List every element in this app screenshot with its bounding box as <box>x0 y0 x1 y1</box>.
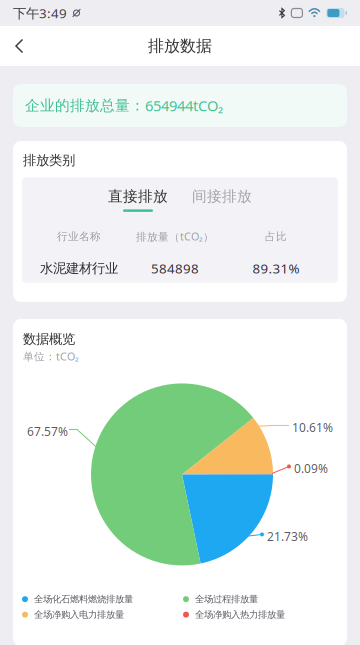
staticText: 行业名称 <box>57 230 101 243</box>
staticText: 全场净购入电力排放量 <box>34 609 124 620</box>
staticText: 单位：tCO₂ <box>23 349 79 363</box>
staticText: 67.57% <box>27 423 68 439</box>
staticText: 全场过程排放量 <box>195 593 258 605</box>
staticText: 0.09% <box>294 460 328 476</box>
staticText: 21.73% <box>267 528 308 544</box>
staticText: 数据概览 <box>23 331 75 347</box>
staticText: 下午3:49 <box>13 4 67 22</box>
staticText: 水泥建材行业 <box>40 260 118 277</box>
staticText: 占比 <box>265 230 287 243</box>
staticText: 企业的排放总量： <box>25 96 145 114</box>
staticText: 10.61% <box>292 419 333 435</box>
staticText: 直接排放 <box>108 187 168 205</box>
staticText: 间接排放 <box>192 187 252 205</box>
staticText: 排放量（tCO₂） <box>136 229 214 243</box>
button[interactable]: 返回 <box>0 26 44 66</box>
staticText: 全场化石燃料燃烧排放量 <box>34 593 133 605</box>
staticText: 584898 <box>151 259 199 277</box>
button[interactable]: 间接排放 <box>188 177 256 219</box>
staticText: 89.31% <box>252 259 299 277</box>
staticText: 654944tCO₂ <box>145 96 223 115</box>
staticText: 全场净购入热力排放量 <box>195 609 285 620</box>
staticText: 排放数据 <box>148 36 212 56</box>
staticText: 排放类别 <box>23 152 75 168</box>
button[interactable]: 直接排放 <box>104 177 172 219</box>
